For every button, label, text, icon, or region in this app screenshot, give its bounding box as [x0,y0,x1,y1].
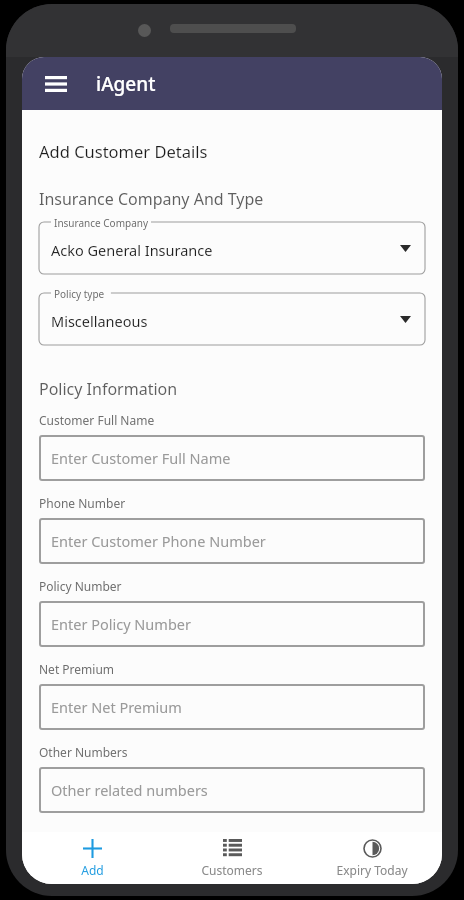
button[interactable]: Insurance Company [39,222,425,274]
staticText: Enter Customer Phone Number [51,531,266,551]
button[interactable]: Enter Policy Number [39,601,425,647]
button[interactable]: Open navigation menu [34,62,78,106]
staticText: Policy Information [39,378,178,400]
staticText: Policy type [54,287,105,301]
staticText: Acko General Insurance [51,240,213,260]
staticText: Expiry Today [336,862,408,878]
staticText: Phone Number [39,495,126,511]
staticText: Customers [201,862,263,878]
staticText: iAgent [96,71,156,97]
staticText: Miscellaneous [51,311,148,331]
button[interactable]: Policy type [39,293,425,345]
button[interactable]: Add [22,832,162,884]
staticText: Net Premium [39,661,115,677]
staticText: Insurance Company [54,216,149,230]
staticText: Other Numbers [39,744,128,760]
button[interactable]: Enter Customer Phone Number [39,518,425,564]
button[interactable]: Other related numbers [39,767,425,813]
button[interactable]: Expiry Today [302,832,442,884]
button[interactable]: Customers [162,832,302,884]
button[interactable]: Enter Customer Full Name [39,435,425,481]
staticText: Enter Policy Number [51,614,191,634]
staticText: Add Customer Details [39,140,208,162]
button[interactable]: Enter Net Premium [39,684,425,730]
staticText: Customer Full Name [39,412,155,428]
staticText: Add [81,862,104,878]
staticText: Enter Customer Full Name [51,448,231,468]
staticText: Policy Number [39,578,122,594]
staticText: Enter Net Premium [51,697,182,717]
staticText: Insurance Company And Type [39,188,264,210]
staticText: Other related numbers [51,780,208,800]
